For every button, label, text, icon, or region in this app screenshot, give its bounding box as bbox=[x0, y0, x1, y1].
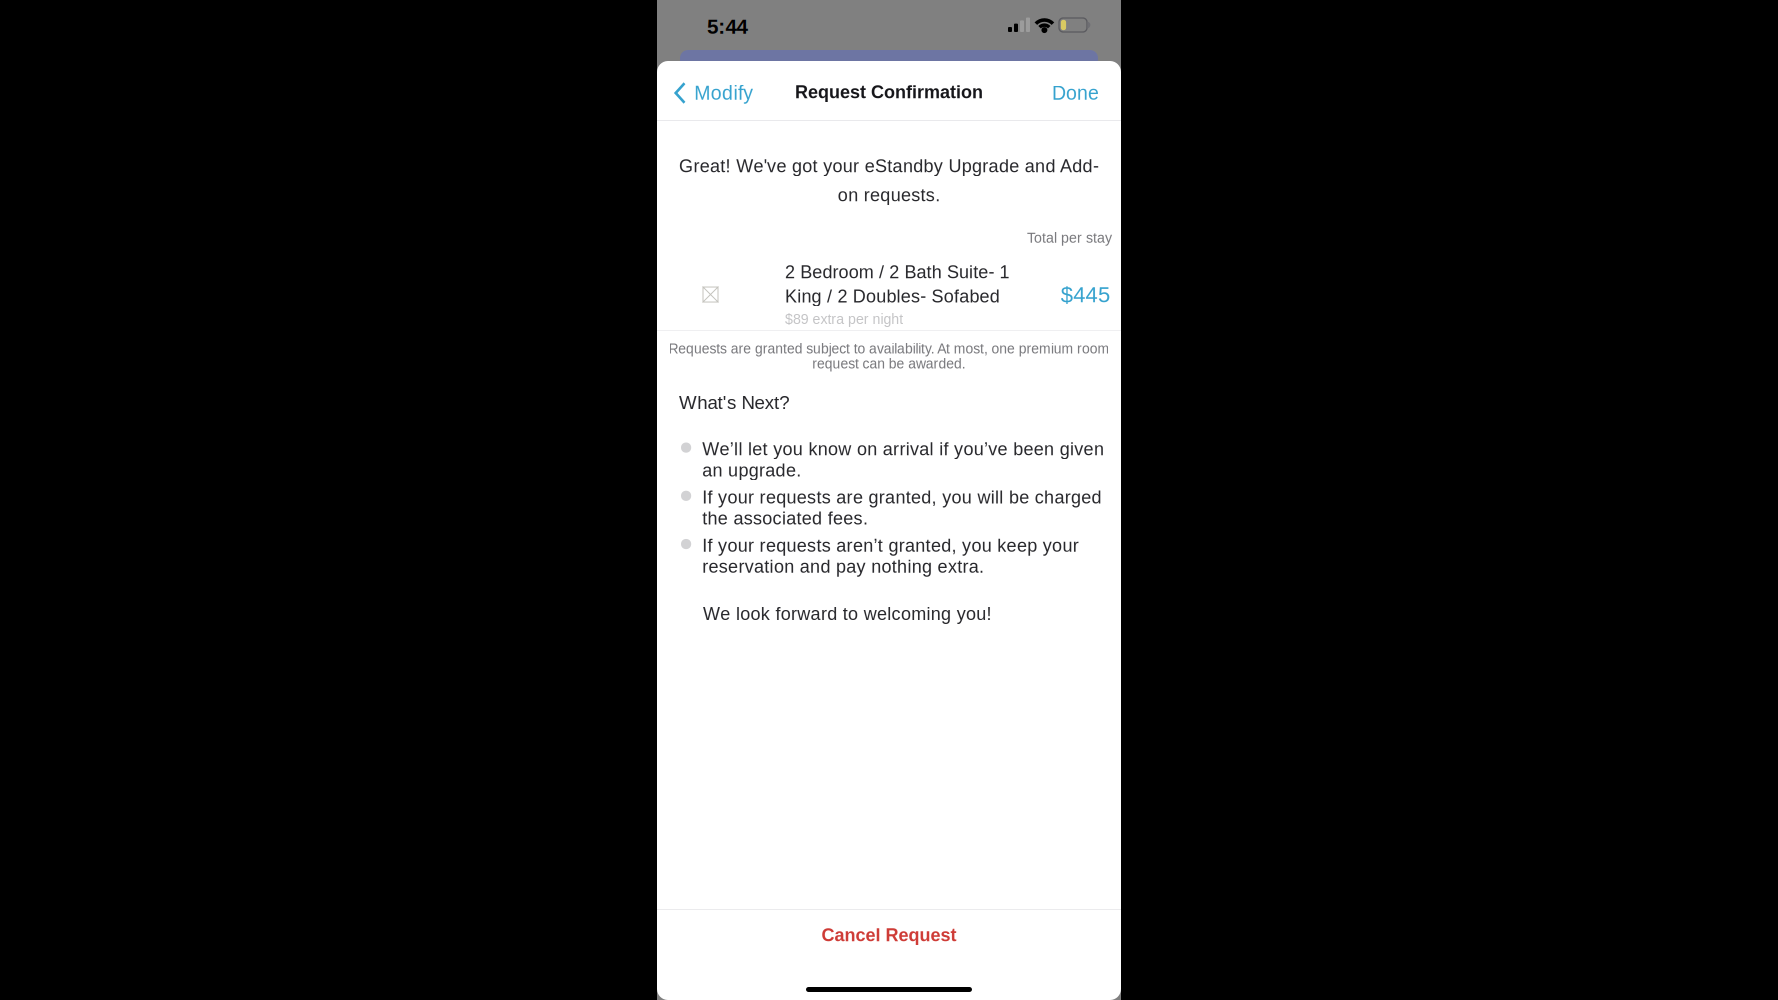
staticText: request can be awarded. bbox=[812, 356, 966, 371]
staticText: Modify bbox=[694, 82, 753, 104]
staticText: reservation and pay nothing extra. bbox=[702, 556, 984, 577]
staticText: Request Confirmation bbox=[795, 82, 983, 102]
button[interactable]: Cancel Request bbox=[657, 906, 1121, 964]
button[interactable]: 2 Bedroom / 2 Bath Suite- 1 bbox=[657, 256, 1121, 333]
staticText: the associated fees. bbox=[702, 508, 868, 528]
staticText: King / 2 Doubles- Sofabed bbox=[785, 286, 1000, 306]
staticText: Cancel Request bbox=[821, 925, 956, 945]
staticText: We’ll let you know on arrival if you’ve … bbox=[702, 439, 1104, 459]
staticText: on requests. bbox=[838, 185, 940, 205]
staticText: $445 bbox=[1061, 282, 1110, 307]
staticText: 5:44 bbox=[707, 15, 748, 38]
staticText: Requests are granted subject to availabi… bbox=[668, 341, 1109, 356]
staticText: $89 extra per night bbox=[785, 311, 903, 327]
staticText: If your requests are granted, you will b… bbox=[702, 487, 1102, 507]
button[interactable]: Done bbox=[1035, 82, 1099, 104]
staticText: We look forward to welcoming you! bbox=[703, 604, 992, 624]
image bbox=[702, 286, 718, 302]
staticText: 2 Bedroom / 2 Bath Suite- 1 bbox=[785, 262, 1010, 282]
button[interactable]: Modify bbox=[672, 80, 763, 106]
staticText: Great! We've got your eStandby Upgrade a… bbox=[679, 156, 1099, 176]
staticText: If your requests aren’t granted, you kee… bbox=[702, 535, 1079, 555]
staticText: Done bbox=[1052, 82, 1099, 104]
staticText: Total per stay bbox=[1027, 230, 1112, 246]
staticText: an upgrade. bbox=[702, 460, 801, 480]
staticText: What's Next? bbox=[679, 392, 789, 413]
